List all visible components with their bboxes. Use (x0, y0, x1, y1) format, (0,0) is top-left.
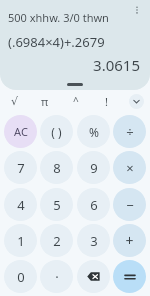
staticText: ÷ (126, 123, 134, 141)
button[interactable]: 6 (77, 188, 110, 221)
button[interactable]: 1 (4, 224, 37, 257)
button[interactable]: + (113, 224, 146, 257)
staticText: % (89, 124, 99, 140)
button[interactable]: 2 (40, 224, 73, 257)
staticText: √ (11, 95, 19, 108)
staticText: 7 (17, 159, 25, 177)
button[interactable]: π (30, 90, 60, 112)
button[interactable]: × (113, 151, 146, 184)
button[interactable]: 3 (77, 224, 110, 257)
button[interactable]: 9 (77, 151, 110, 184)
staticText: 8 (53, 159, 61, 177)
button[interactable]: 5 (40, 188, 73, 221)
staticText: 1 (17, 232, 25, 250)
staticText: π (41, 94, 49, 109)
button[interactable]: 4 (4, 188, 37, 221)
button[interactable]: ! (91, 90, 122, 112)
staticText: 5 (53, 196, 61, 214)
button[interactable]: More functions (129, 94, 144, 109)
button[interactable]: 7 (4, 151, 37, 184)
button[interactable]: ( ) (40, 115, 73, 148)
button[interactable]: More options (130, 3, 144, 17)
button[interactable]: % (77, 115, 110, 148)
staticText: ( ) (51, 124, 62, 140)
staticText: 6 (90, 196, 98, 214)
button[interactable]: · (40, 260, 73, 293)
button[interactable]: ^ (60, 90, 91, 112)
button[interactable]: 8 (40, 151, 73, 184)
button[interactable]: ÷ (113, 115, 146, 148)
button[interactable]: Expand display (67, 83, 83, 86)
staticText: ! (105, 94, 108, 109)
staticText: 4 (17, 196, 25, 214)
staticText: 500 xhhw. 3/0 thwn (8, 10, 109, 25)
staticText: 0 (17, 268, 25, 286)
staticText: 9 (90, 159, 98, 177)
staticText: × (126, 159, 134, 177)
staticText: − (126, 196, 134, 214)
staticText: 3 (90, 232, 98, 250)
button[interactable]: 0 (4, 260, 37, 293)
staticText: (.6984×4)+.2679 (8, 33, 105, 51)
button[interactable]: Backspace (77, 260, 110, 293)
staticText: · (55, 268, 59, 286)
staticText: ^ (73, 94, 79, 108)
staticText: 3.0615 (0, 55, 140, 75)
staticText: AC (14, 124, 28, 139)
button[interactable]: √ (0, 90, 30, 112)
button[interactable]: − (113, 188, 146, 221)
staticText: + (125, 231, 134, 250)
button[interactable]: AC (4, 115, 37, 148)
staticText: 2 (53, 232, 61, 250)
button[interactable]: Equals (113, 260, 146, 293)
